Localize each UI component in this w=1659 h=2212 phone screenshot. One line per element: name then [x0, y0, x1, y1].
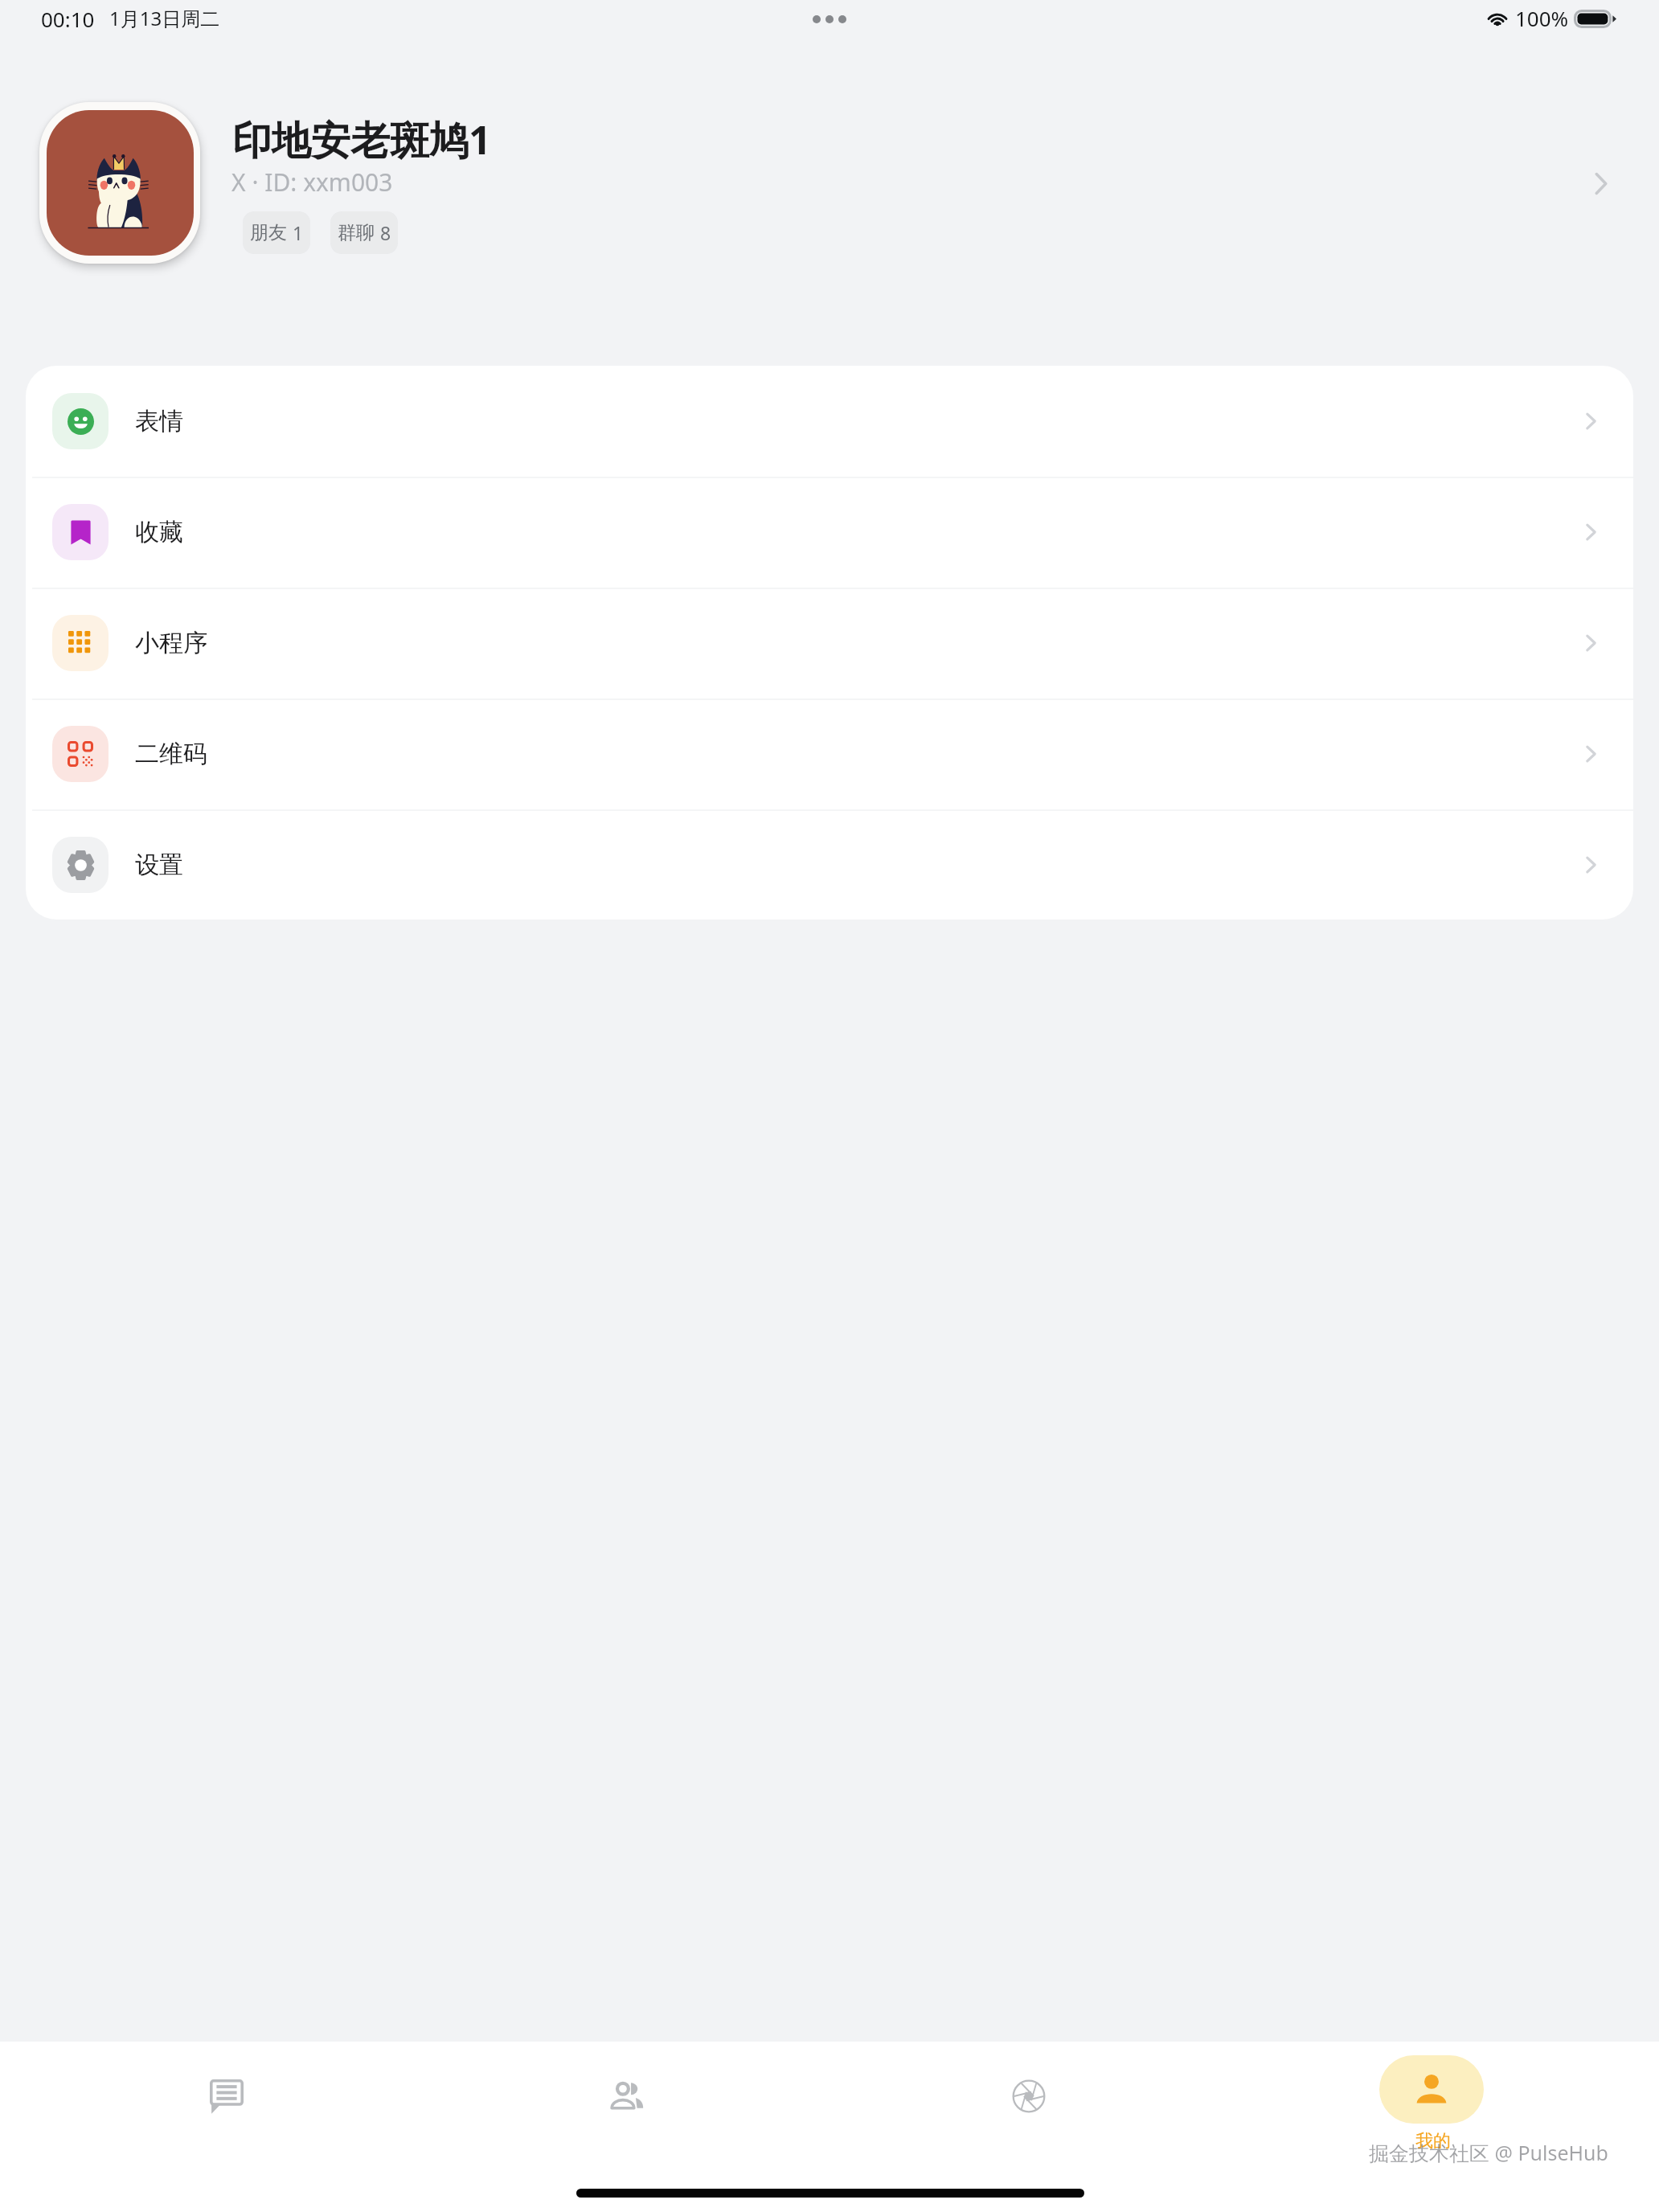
- button[interactable]: 消息: [174, 2062, 279, 2130]
- staticText: 收藏: [135, 517, 183, 547]
- staticText: 群聊: [338, 221, 375, 244]
- other: 联系人: [610, 2079, 644, 2113]
- staticText: 1月13日周二: [109, 5, 220, 31]
- button[interactable]: 表情: [26, 366, 1633, 477]
- staticText: 二维码: [135, 739, 207, 769]
- button[interactable]: 群聊: [330, 211, 398, 254]
- staticText: 朋友: [250, 221, 287, 244]
- button[interactable]: 小程序: [26, 588, 1633, 698]
- button[interactable]: 设置: [26, 809, 1633, 920]
- button[interactable]: 联系人: [575, 2062, 679, 2130]
- button[interactable]: 收藏: [26, 477, 1633, 588]
- staticText: 8: [380, 220, 391, 245]
- staticText: 00:10: [41, 5, 95, 33]
- staticText: 小程序: [135, 628, 207, 658]
- staticText: 设置: [135, 850, 183, 880]
- other: 我的: [1413, 2071, 1450, 2108]
- other: 消息: [210, 2079, 244, 2113]
- other: 查看个人资料: [1595, 173, 1608, 195]
- staticText: 掘金技术社区 @ PulseHub: [1369, 2139, 1608, 2166]
- other: 动态: [1012, 2079, 1046, 2113]
- button[interactable]: 动态: [977, 2062, 1081, 2130]
- staticText: 表情: [135, 406, 183, 436]
- staticText: 100%: [1515, 4, 1569, 32]
- staticText: 印地安老斑鸠1: [232, 113, 492, 166]
- staticText: X · ID: xxm003: [231, 166, 393, 199]
- staticText: 1: [293, 220, 304, 245]
- button[interactable]: [26, 88, 1633, 273]
- staticText: 我的: [1415, 2130, 1451, 2153]
- button[interactable]: 朋友: [243, 211, 310, 254]
- button[interactable]: 我的: [1379, 2055, 1484, 2124]
- button[interactable]: 二维码: [26, 698, 1633, 809]
